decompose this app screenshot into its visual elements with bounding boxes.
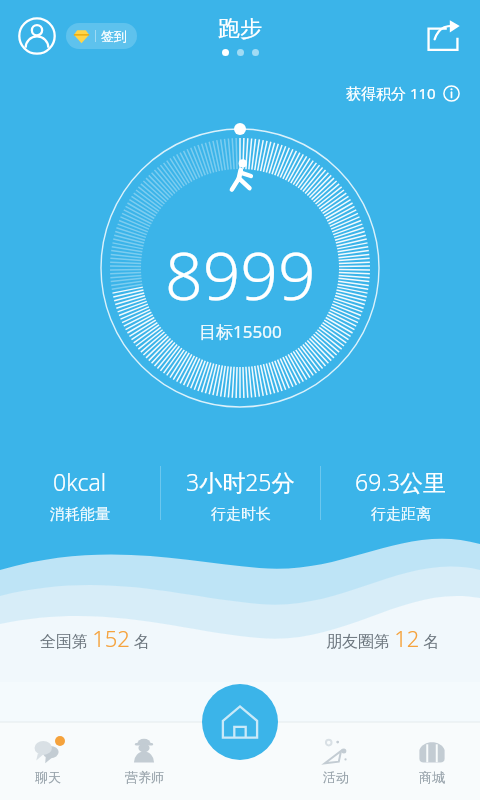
staticText: 全国第 152 名 (40, 623, 151, 653)
staticText: 营养师 (125, 769, 164, 785)
staticText: 朋友圈第 12 名 (326, 623, 440, 653)
button[interactable]: 69.3公里 (321, 466, 480, 524)
staticText: 3小时25分 (186, 466, 295, 497)
button[interactable]: Profile (18, 17, 56, 55)
button[interactable]: 0kcal (0, 466, 160, 524)
staticText: 8999 (165, 229, 316, 319)
button[interactable]: 商城 (384, 722, 480, 800)
button[interactable]: 朋友圈第 12 名 (326, 623, 440, 653)
button[interactable]: 获得积分 110 (346, 83, 460, 103)
staticText: 跑步 (218, 15, 262, 43)
button[interactable]: Share (424, 18, 462, 56)
staticText: 活动 (323, 769, 349, 785)
button[interactable]: 聊天 (0, 722, 96, 800)
staticText: 商城 (419, 769, 445, 785)
staticText: 目标15500 (199, 320, 282, 343)
button[interactable]: 签到 (66, 23, 137, 49)
button[interactable]: 活动 (288, 722, 384, 800)
staticText: 签到 (101, 28, 127, 44)
staticText: 消耗能量 (50, 505, 110, 524)
staticText: 获得积分 110 (346, 83, 436, 103)
staticText: 0kcal (53, 466, 107, 497)
staticText: 聊天 (35, 769, 61, 785)
staticText: 行走时长 (211, 505, 271, 524)
staticText: 69.3公里 (355, 466, 447, 497)
button[interactable]: 3小时25分 (161, 466, 320, 524)
staticText: 行走距离 (371, 505, 431, 524)
button[interactable]: 营养师 (96, 722, 192, 800)
button[interactable]: 全国第 152 名 (40, 623, 151, 653)
button[interactable]: Home (202, 684, 278, 760)
